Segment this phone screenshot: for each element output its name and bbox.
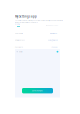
staticText: Manage account: [45, 24, 57, 26]
staticText: User name: [15, 33, 23, 34]
button[interactable]: User name: [15, 30, 60, 37]
staticText: Email address: [15, 39, 25, 41]
button[interactable]: Password: [15, 44, 60, 51]
staticText: Profile: [15, 23, 20, 25]
staticText: Password: [15, 46, 23, 48]
staticText: Details: [19, 51, 23, 53]
staticText: name@mail.com: [47, 39, 57, 41]
staticText: tempor incididunt ut labore et dolore: [15, 22, 38, 23]
button[interactable]: Manage account: [45, 24, 57, 26]
button[interactable]: Save changes: [22, 88, 53, 93]
button[interactable]: Profile: [15, 23, 20, 27]
staticText: Default user: [49, 33, 57, 34]
staticText: Change: [51, 46, 57, 48]
staticText: Save changes: [32, 90, 43, 92]
button[interactable]: Email address: [15, 37, 60, 44]
staticText: Lorem ipsum dolor sit amet, consectetur …: [15, 19, 63, 21]
staticText: My Settings app: [15, 15, 37, 18]
